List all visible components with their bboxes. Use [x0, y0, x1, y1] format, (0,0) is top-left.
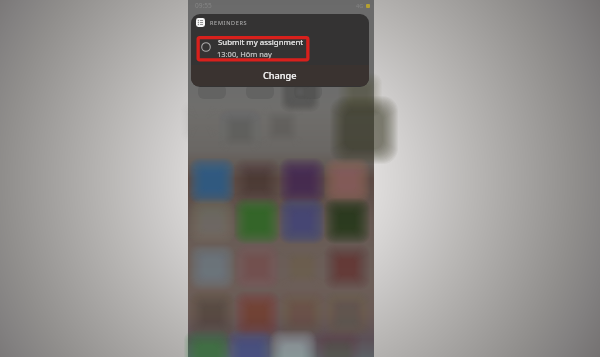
staticText: Change [263, 69, 297, 82]
staticText: 09:55 [195, 1, 212, 10]
staticText: 4G [356, 2, 364, 9]
staticText: REMINDERS [210, 19, 248, 26]
button[interactable]: Submit my assignment [191, 34, 369, 63]
staticText: Submit my assignment [218, 37, 304, 48]
button[interactable]: Change [191, 65, 369, 86]
staticText: 13:00, Hôm nay [217, 49, 272, 59]
